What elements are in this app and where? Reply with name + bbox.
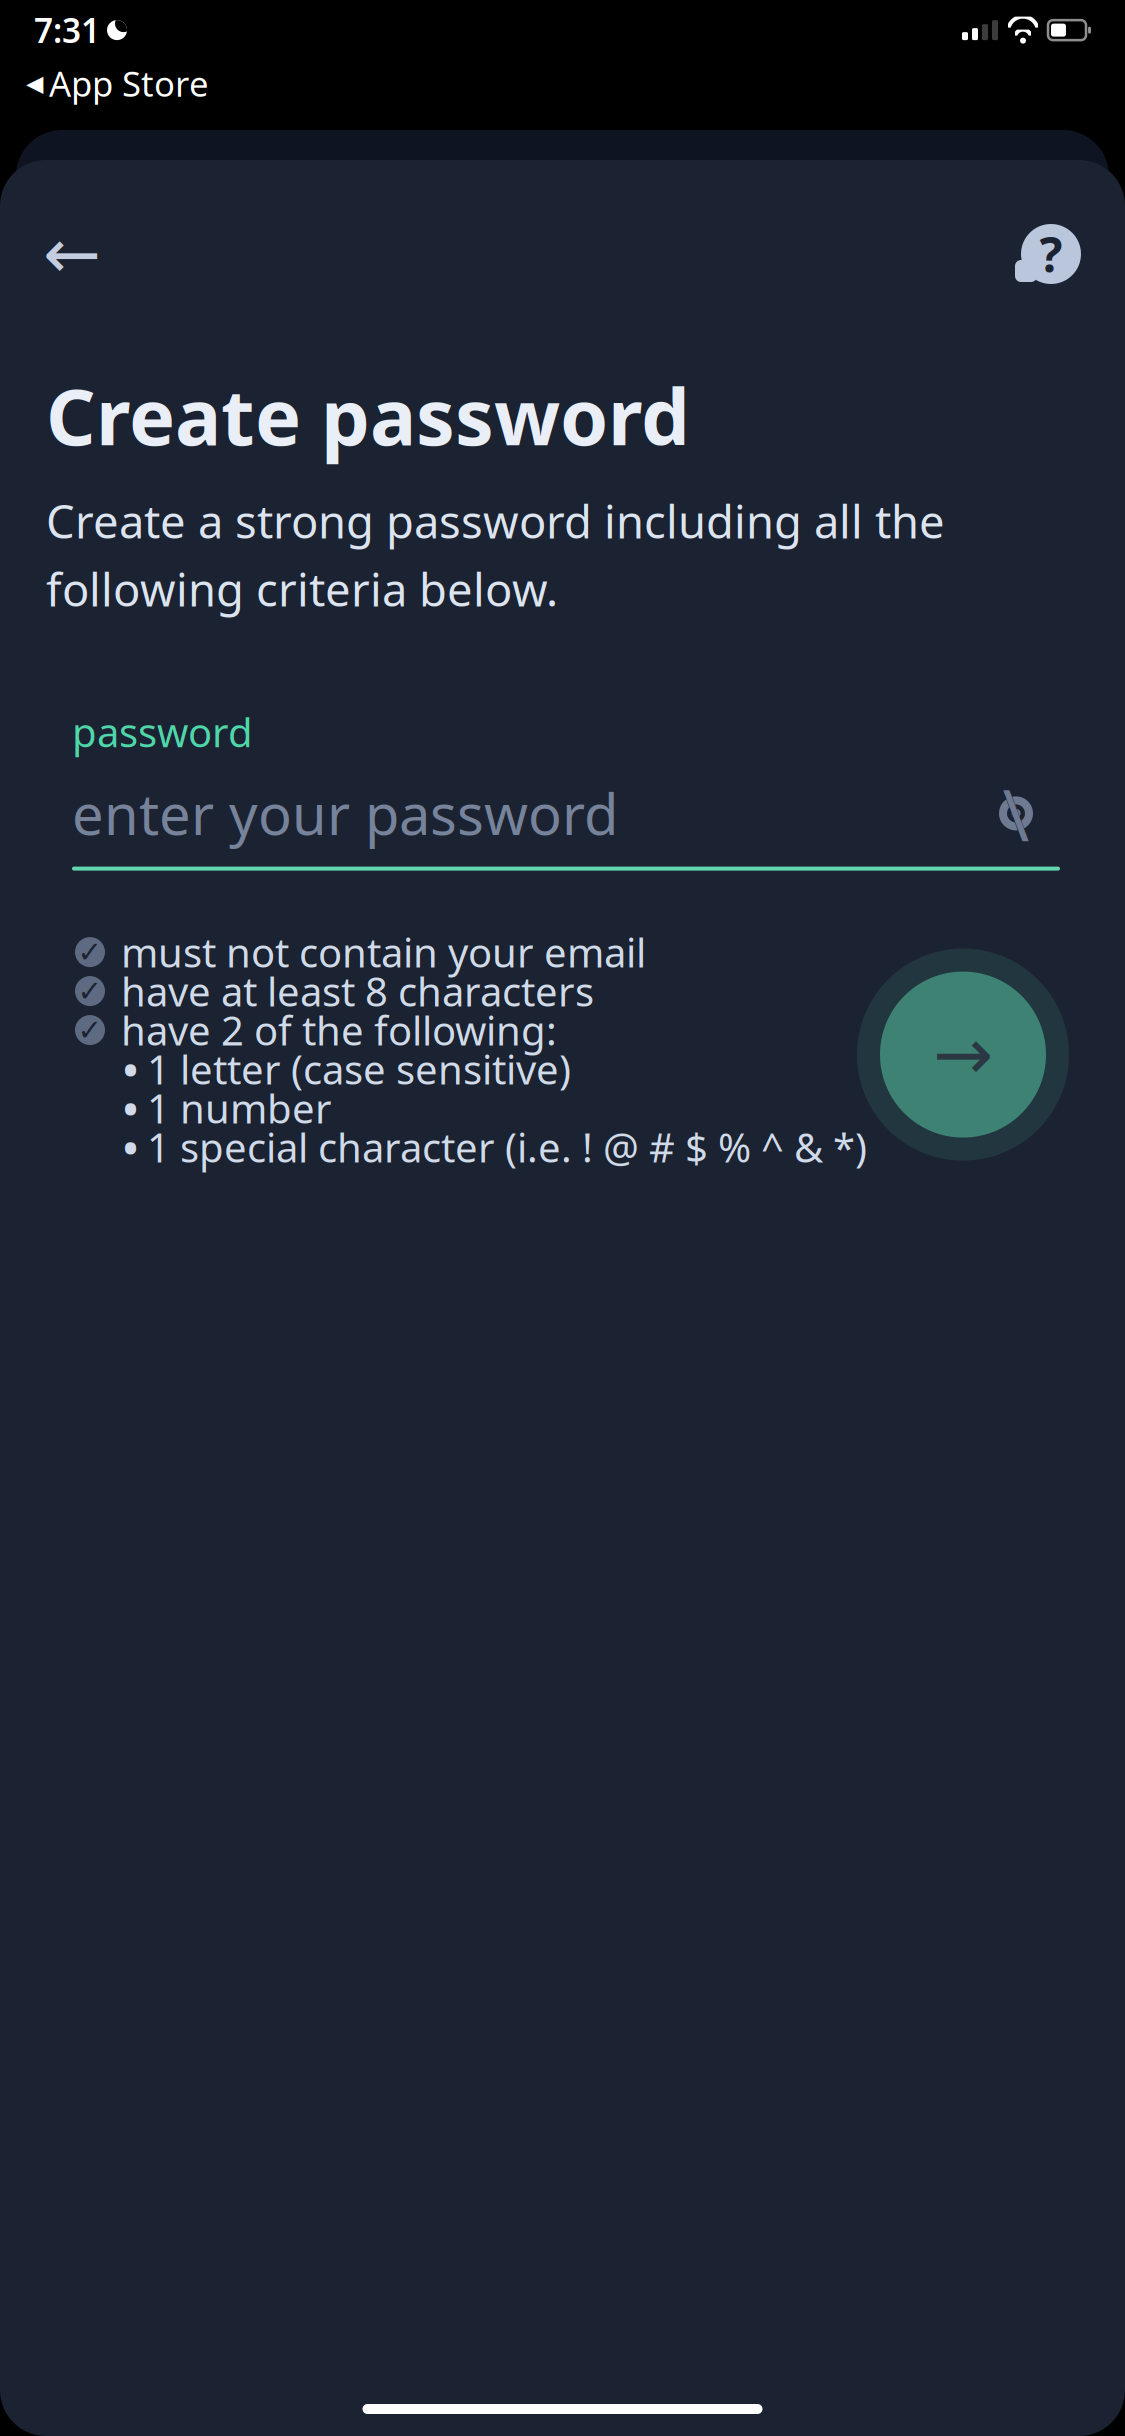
staticText: \: [1000, 758, 1031, 868]
staticText: Create password: [46, 364, 690, 467]
staticText: •: [123, 1081, 138, 1135]
staticText: enter your password: [72, 776, 618, 851]
staticText: ?: [1039, 222, 1062, 286]
button[interactable]: ◀: [16, 56, 219, 110]
staticText: 1 special character (i.e. ! @ # $ % ^ & …: [147, 1120, 867, 1174]
staticText: •: [123, 1042, 138, 1096]
staticText: following criteria below.: [46, 559, 558, 619]
button[interactable]: Show password: [972, 780, 1060, 846]
staticText: have at least 8 characters: [121, 964, 594, 1018]
staticText: ✓: [77, 1013, 102, 1047]
staticText: 7:31: [34, 8, 100, 52]
staticText: •: [123, 1120, 138, 1174]
button[interactable]: Back: [26, 216, 118, 292]
button[interactable]: Continue: [857, 949, 1069, 1161]
staticText: must not contain your email: [121, 925, 646, 979]
button[interactable]: Help: [999, 208, 1095, 300]
staticText: →: [933, 1014, 993, 1095]
staticText: 1 letter (case sensitive): [147, 1042, 571, 1096]
staticText: App Store: [49, 60, 209, 106]
staticText: 1 number: [147, 1081, 332, 1135]
staticText: password: [72, 705, 253, 758]
staticText: Create a strong password including all t…: [46, 491, 945, 551]
staticText: ✓: [77, 935, 102, 969]
staticText: ←: [43, 215, 101, 293]
staticText: ◀: [26, 70, 43, 96]
staticText: have 2 of the following:: [121, 1003, 557, 1057]
staticText: \: [1002, 766, 1029, 861]
staticText: ✓: [77, 974, 102, 1008]
